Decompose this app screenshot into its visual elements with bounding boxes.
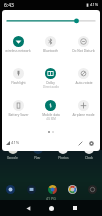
staticText: Airplane mode: [72, 113, 95, 117]
button[interactable]: Clock: [76, 150, 102, 163]
button[interactable]: Google: [62, 183, 82, 195]
button[interactable]: Phone: [0, 183, 21, 195]
staticText: Direct audio: [43, 85, 59, 89]
button[interactable]: Camera: [82, 183, 102, 195]
staticText: 41%: [11, 140, 20, 146]
button[interactable]: Bluetooth: [34, 31, 67, 63]
button[interactable]: Messages: [21, 183, 42, 195]
staticText: Photos: [58, 156, 69, 159]
staticText: Bluetooth: [43, 49, 58, 53]
button[interactable]: [2, 10, 100, 31]
button[interactable]: Auto-rotate: [67, 63, 100, 95]
staticText: Auto-rotate: [75, 81, 93, 85]
button[interactable]: Airplane mode: [67, 95, 100, 127]
button[interactable]: Play: [25, 150, 50, 163]
button[interactable]: Photos: [50, 150, 76, 163]
button[interactable]: Google: [0, 150, 25, 163]
button[interactable]: Recent apps: [63, 200, 86, 216]
button[interactable]: Flashlight: [2, 63, 34, 95]
staticText: 41%: [90, 2, 99, 8]
button[interactable]: Back: [16, 200, 40, 216]
button[interactable]: Edit tiles: [75, 138, 85, 148]
staticText: Mobile data: [42, 113, 60, 117]
staticText: Play: [34, 156, 41, 159]
staticText: Battery Saver: [8, 113, 29, 117]
staticText: Clock: [85, 156, 93, 159]
button[interactable]: Mobile data: [34, 95, 67, 127]
staticText: 6:43: [4, 2, 14, 9]
button[interactable]: wireless network: [2, 31, 34, 63]
button[interactable]: Dolby: [34, 63, 67, 95]
staticText: Google: [7, 156, 18, 159]
staticText: Do Not Disturb: [72, 49, 95, 53]
button[interactable]: Home: [40, 200, 63, 216]
staticText: 41 PG: [46, 196, 56, 201]
button[interactable]: Chrome: [42, 183, 62, 195]
staticText: 4G SIM: [46, 117, 56, 121]
button[interactable]: Do Not Disturb: [67, 31, 100, 63]
staticText: wireless network: [5, 49, 31, 53]
staticText: Flashlight: [11, 81, 26, 85]
staticText: Dolby: [46, 81, 55, 85]
button[interactable]: Battery Saver: [2, 95, 34, 127]
button[interactable]: Settings: [86, 138, 96, 148]
